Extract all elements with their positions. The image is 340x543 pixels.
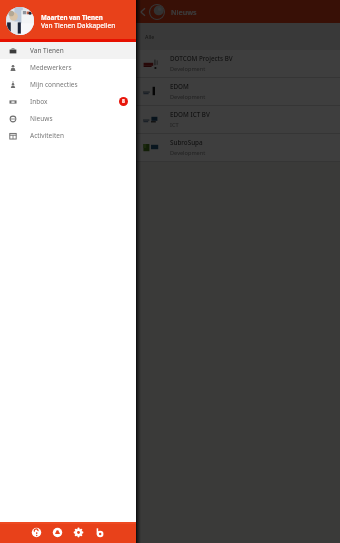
staticText: Mijn connecties	[30, 80, 78, 89]
staticText: Inbox	[30, 97, 48, 106]
button[interactable]: Uitloggen	[91, 524, 108, 541]
staticText: Maarten van Tienen	[41, 13, 103, 21]
staticText: Nieuws	[171, 7, 197, 17]
staticText: Alle	[145, 33, 155, 40]
button[interactable]: Back	[137, 6, 148, 17]
button[interactable]: Nieuws	[0, 110, 136, 127]
button[interactable]: Activiteiten	[0, 127, 136, 144]
button[interactable]: Mijn connecties	[0, 76, 136, 93]
staticText: EDOM	[170, 82, 189, 91]
staticText: 8	[122, 98, 125, 105]
button[interactable]: Help	[28, 524, 45, 541]
button[interactable]: DOTCOM Projects BV	[0, 50, 340, 77]
button[interactable]: SubroSupa	[0, 134, 340, 161]
staticText: Development	[170, 65, 206, 73]
button[interactable]: Profiel	[49, 524, 66, 541]
staticText: Van Tienen	[30, 46, 64, 55]
button[interactable]: EDOM	[0, 78, 340, 105]
staticText: DOTCOM Projects BV	[170, 54, 233, 63]
staticText: Nieuws	[30, 114, 53, 123]
button[interactable]	[6, 7, 34, 35]
staticText: ICT	[170, 121, 179, 129]
staticText: Development	[170, 149, 206, 157]
staticText: Van Tienen Dakkapellen	[41, 21, 116, 30]
staticText: EDOM ICT BV	[170, 110, 210, 119]
staticText: Medewerkers	[30, 63, 72, 72]
button[interactable]: EDOM ICT BV	[0, 106, 340, 133]
staticText: SubroSupa	[170, 138, 203, 147]
button[interactable]: Van Tienen	[0, 42, 136, 59]
staticText: Development	[170, 93, 206, 101]
button[interactable]: Medewerkers	[0, 59, 136, 76]
button[interactable]: Inbox	[0, 93, 136, 110]
staticText: Activiteiten	[30, 131, 64, 140]
button[interactable]: Instellingen	[70, 524, 87, 541]
